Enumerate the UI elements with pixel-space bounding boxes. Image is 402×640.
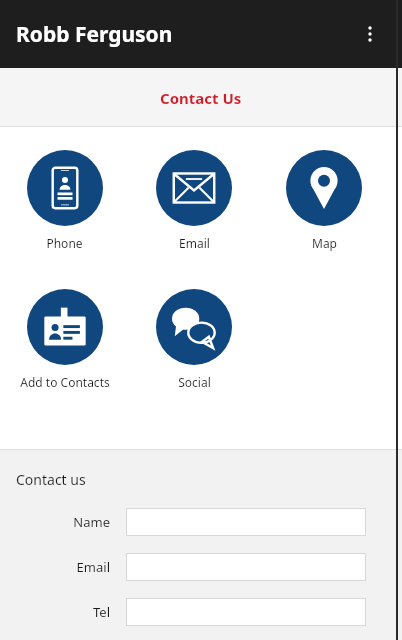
- staticText: Email: [179, 235, 210, 251]
- button[interactable]: Map: [259, 150, 389, 251]
- staticText: Name: [73, 513, 110, 531]
- button[interactable]: More options: [352, 16, 388, 52]
- button[interactable]: Phone: [0, 150, 129, 251]
- staticText: Contact Us: [160, 88, 242, 108]
- button[interactable]: Social: [129, 289, 259, 390]
- staticText: Add to Contacts: [20, 374, 110, 390]
- button[interactable]: Robb Ferguson: [16, 20, 173, 49]
- staticText: Tel: [92, 603, 110, 621]
- staticText: Email: [76, 558, 110, 576]
- staticText: Robb Ferguson: [16, 20, 173, 49]
- button[interactable]: [126, 508, 366, 536]
- button[interactable]: [126, 553, 366, 581]
- button[interactable]: [126, 598, 366, 626]
- staticText: Contact us: [16, 470, 86, 489]
- button[interactable]: Email: [129, 150, 259, 251]
- staticText: Social: [178, 374, 211, 390]
- staticText: Phone: [46, 235, 83, 251]
- button[interactable]: Add to Contacts: [0, 289, 129, 390]
- staticText: Map: [312, 235, 337, 251]
